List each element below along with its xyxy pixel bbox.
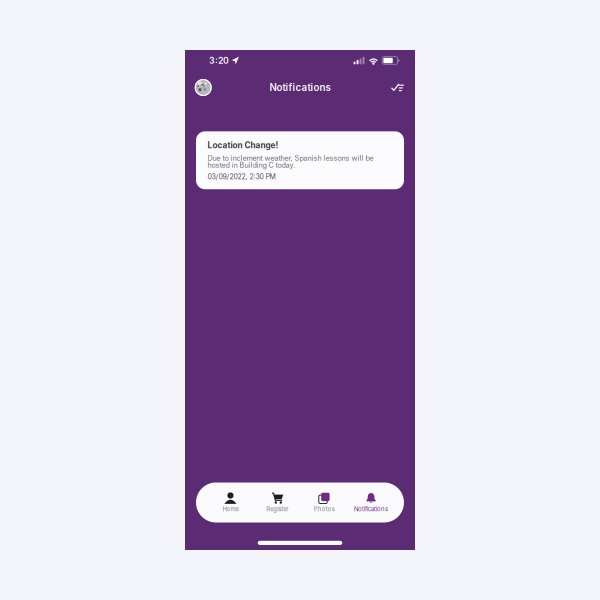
staticText: Due to inclement weather, Spanish lesson… [207, 154, 373, 162]
staticText: Notifications [269, 82, 330, 93]
button[interactable]: Home [207, 487, 254, 518]
staticText: 3:20 [209, 55, 229, 66]
staticText: hosted in Building C today. [207, 161, 295, 169]
staticText: Photos [314, 505, 335, 513]
staticText: Notifications [354, 505, 388, 513]
button[interactable]: Notifications [348, 487, 394, 518]
button[interactable]: Mark all as read [385, 75, 409, 99]
button[interactable]: Profile [191, 75, 215, 99]
staticText: Home [222, 505, 238, 513]
button[interactable]: Photos [301, 487, 348, 518]
staticText: Register [266, 505, 288, 513]
staticText: 03/09/2022, 2:30 PM [207, 172, 275, 181]
button[interactable]: Register [254, 487, 301, 518]
staticText: Location Change! [207, 140, 278, 150]
button[interactable]: Location Change! [196, 131, 404, 189]
